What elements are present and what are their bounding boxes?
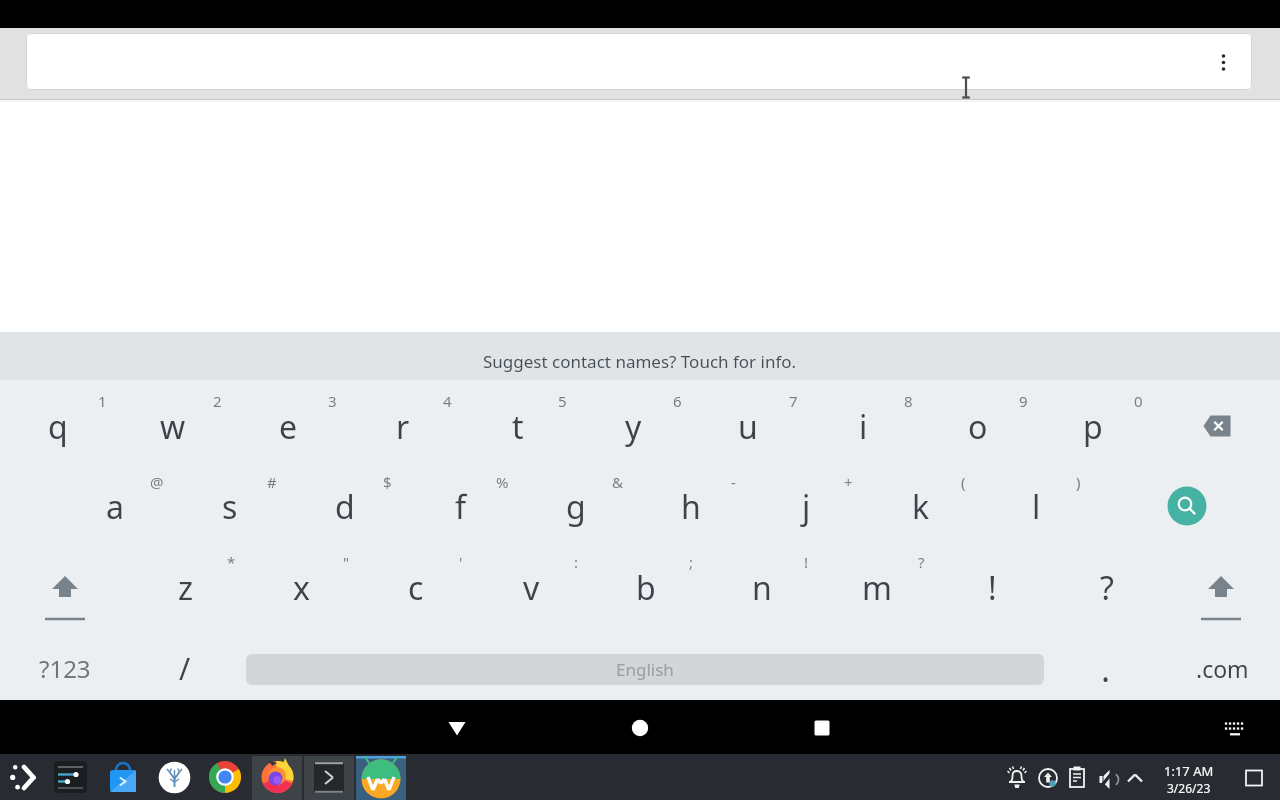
staticText: + <box>844 472 853 492</box>
button[interactable]: 1:17 AM <box>1150 762 1228 794</box>
button[interactable] <box>10 552 120 624</box>
button[interactable] <box>1003 764 1031 792</box>
staticText: 3/26/23 <box>1167 780 1211 794</box>
button[interactable]: g <box>526 475 626 539</box>
staticText: x <box>293 566 310 610</box>
staticText: b <box>636 566 656 610</box>
button[interactable] <box>356 756 406 800</box>
button[interactable] <box>0 332 1280 380</box>
button[interactable]: s <box>180 475 280 539</box>
button[interactable]: i <box>813 395 913 459</box>
button[interactable]: a <box>65 475 165 539</box>
button[interactable] <box>1238 762 1270 794</box>
button[interactable]: n <box>712 556 812 620</box>
staticText: c <box>408 566 424 610</box>
staticText: m <box>862 566 892 610</box>
button[interactable] <box>1064 764 1092 792</box>
staticText: - <box>731 472 736 492</box>
button[interactable]: v <box>481 556 581 620</box>
button[interactable] <box>613 701 667 755</box>
button[interactable] <box>1094 764 1122 792</box>
staticText: u <box>738 405 758 449</box>
staticText: 9 <box>1019 391 1028 411</box>
button[interactable]: f <box>411 475 511 539</box>
staticText: 3 <box>328 391 337 411</box>
button[interactable]: e <box>238 395 338 459</box>
staticText: . <box>1101 646 1111 692</box>
staticText: p <box>1083 405 1103 449</box>
staticText: $ <box>383 472 392 492</box>
staticText: ' <box>459 552 463 572</box>
button[interactable]: x <box>251 556 351 620</box>
button[interactable]: h <box>641 475 741 539</box>
button[interactable] <box>1035 764 1063 792</box>
staticText: s <box>222 485 238 529</box>
button[interactable] <box>430 701 484 755</box>
staticText: o <box>968 405 988 449</box>
staticText: 7 <box>789 391 798 411</box>
button[interactable]: . <box>1056 637 1156 701</box>
button[interactable] <box>1207 45 1241 79</box>
staticText: e <box>279 405 298 449</box>
button[interactable]: o <box>928 395 1028 459</box>
staticText: English <box>616 658 674 681</box>
button[interactable]: r <box>353 395 453 459</box>
button[interactable]: English <box>246 654 1044 685</box>
button[interactable] <box>1215 709 1255 749</box>
button[interactable]: b <box>596 556 696 620</box>
staticText: # <box>267 472 277 492</box>
button[interactable]: j <box>756 475 856 539</box>
staticText: k <box>912 485 930 529</box>
button[interactable]: p <box>1043 395 1143 459</box>
button[interactable]: ! <box>942 556 1042 620</box>
button[interactable] <box>208 760 242 794</box>
staticText: q <box>48 405 68 449</box>
staticText: 5 <box>558 391 567 411</box>
staticText: w <box>160 405 186 449</box>
button[interactable]: u <box>698 395 798 459</box>
button[interactable]: y <box>583 395 683 459</box>
button[interactable] <box>252 756 302 800</box>
button[interactable]: z <box>136 556 236 620</box>
staticText: ! <box>988 566 997 610</box>
button[interactable]: m <box>827 556 927 620</box>
button[interactable] <box>1166 552 1276 624</box>
staticText: Suggest contact names? Touch for info. <box>483 350 797 373</box>
button[interactable] <box>104 758 142 798</box>
button[interactable]: t <box>468 395 568 459</box>
button[interactable]: / <box>135 636 235 700</box>
button[interactable]: k <box>871 475 971 539</box>
staticText: f <box>455 485 467 529</box>
button[interactable] <box>304 756 354 800</box>
staticText: : <box>574 552 579 572</box>
staticText: " <box>343 552 350 572</box>
button[interactable] <box>158 761 191 794</box>
button[interactable] <box>1137 474 1237 538</box>
button[interactable] <box>1167 394 1267 458</box>
button[interactable]: q <box>8 395 108 459</box>
staticText: ? <box>918 552 925 572</box>
button[interactable]: ?123 <box>10 633 120 703</box>
button[interactable] <box>2 756 46 800</box>
button[interactable]: w <box>123 395 223 459</box>
staticText: t <box>512 405 524 449</box>
staticText: h <box>681 485 701 529</box>
staticText: l <box>1032 485 1041 529</box>
button[interactable] <box>54 760 88 794</box>
staticText: & <box>612 472 623 492</box>
staticText: ? <box>1100 566 1114 610</box>
staticText: .com <box>1196 653 1249 684</box>
staticText: 6 <box>673 391 682 411</box>
button[interactable]: l <box>986 475 1086 539</box>
staticText: 1 <box>98 391 107 411</box>
button[interactable] <box>26 33 1252 90</box>
staticText: j <box>802 485 811 529</box>
button[interactable]: d <box>295 475 395 539</box>
button[interactable]: .com <box>1172 636 1272 700</box>
button[interactable] <box>1121 764 1149 792</box>
button[interactable]: ? <box>1057 556 1157 620</box>
staticText: / <box>179 648 191 689</box>
button[interactable]: c <box>366 556 466 620</box>
button[interactable] <box>795 701 849 755</box>
staticText: 4 <box>443 391 452 411</box>
